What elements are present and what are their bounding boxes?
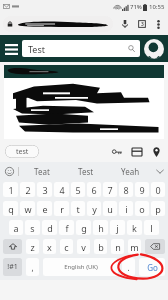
staticText: 8: [123, 184, 129, 196]
button[interactable]: Passwords: [110, 145, 123, 158]
button[interactable]: !#1: [3, 258, 22, 276]
button[interactable]: 8: [119, 182, 133, 197]
button[interactable]: Test: [22, 40, 140, 57]
button[interactable]: 3: [37, 182, 52, 197]
staticText: t: [76, 203, 80, 215]
button[interactable]: g: [76, 220, 91, 235]
button[interactable]: Shift: [3, 239, 22, 254]
button[interactable]: ,: [26, 258, 39, 276]
button[interactable]: 1: [3, 182, 18, 197]
staticText: v: [81, 241, 86, 253]
button[interactable]: n: [111, 239, 124, 254]
button[interactable]: Account: [144, 39, 164, 59]
button[interactable]: 2: [20, 182, 35, 197]
button[interactable]: English (UK): [43, 258, 118, 276]
staticText: 1: [8, 184, 14, 196]
button[interactable]: p: [151, 201, 165, 216]
button[interactable]: Yeah: [108, 162, 152, 180]
button[interactable]: 0: [151, 182, 165, 197]
button[interactable]: h: [93, 220, 108, 235]
staticText: Yeah: [121, 166, 140, 177]
staticText: q: [8, 203, 14, 215]
button[interactable]: Addresses: [150, 145, 163, 158]
staticText: d: [47, 222, 53, 234]
staticText: 3: [141, 21, 144, 28]
button[interactable]: Voice search: [118, 17, 132, 31]
button[interactable]: More options: [151, 17, 165, 31]
button[interactable]: o: [135, 201, 149, 216]
button[interactable]: Menu: [4, 39, 19, 59]
button[interactable]: m: [128, 239, 141, 254]
button[interactable]: j: [110, 220, 125, 235]
button[interactable]: Emoji: [0, 162, 18, 180]
button[interactable]: k: [127, 220, 142, 235]
button[interactable]: i: [119, 201, 133, 216]
button[interactable]: Test: [64, 162, 108, 180]
staticText: 71%: [130, 3, 142, 11]
button[interactable]: r: [54, 201, 69, 216]
button[interactable]: Payment methods: [130, 145, 143, 158]
button[interactable]: 7: [103, 182, 117, 197]
button[interactable]: 6: [87, 182, 101, 197]
staticText: Teat: [34, 166, 50, 177]
staticText: Test: [78, 166, 94, 177]
staticText: m: [130, 241, 139, 253]
button[interactable]: Go: [139, 258, 165, 276]
button[interactable]: u: [103, 201, 117, 216]
button[interactable]: q: [3, 201, 18, 216]
staticText: f: [65, 222, 69, 234]
staticText: !#1: [7, 262, 18, 272]
button[interactable]: b: [94, 239, 107, 254]
button[interactable]: x: [43, 239, 56, 254]
staticText: k: [132, 222, 137, 234]
staticText: 6: [91, 184, 97, 196]
staticText: Go: [147, 262, 158, 273]
button[interactable]: a: [9, 220, 23, 235]
staticText: l: [150, 222, 153, 234]
button[interactable]: Backspace: [145, 239, 165, 254]
staticText: 3: [42, 184, 48, 196]
button[interactable]: v: [77, 239, 90, 254]
button[interactable]: l: [144, 220, 159, 235]
button[interactable]: 4: [54, 182, 69, 197]
button[interactable]: Tabs: [135, 17, 149, 31]
button[interactable]: e: [37, 201, 52, 216]
staticText: i: [125, 203, 128, 215]
button[interactable]: More suggestions: [152, 163, 168, 179]
button[interactable]: d: [42, 220, 57, 235]
staticText: English (UK): [64, 263, 98, 271]
button[interactable]: t: [71, 201, 85, 216]
staticText: z: [30, 241, 35, 253]
staticText: 10:55: [149, 3, 165, 11]
button[interactable]: y: [87, 201, 101, 216]
staticText: 7: [107, 184, 113, 196]
other: Secure connection: [7, 21, 13, 27]
staticText: a: [13, 222, 19, 234]
staticText: u: [107, 203, 113, 215]
staticText: b: [98, 241, 104, 253]
staticText: 4: [59, 184, 65, 196]
staticText: ,: [31, 262, 34, 273]
staticText: w: [24, 203, 32, 215]
button[interactable]: 9: [135, 182, 149, 197]
staticText: .: [127, 262, 130, 273]
staticText: p: [155, 203, 161, 215]
staticText: x: [47, 241, 52, 253]
staticText: y: [92, 203, 97, 215]
staticText: test: [16, 147, 29, 157]
staticText: 9: [139, 184, 145, 196]
button[interactable]: s: [25, 220, 40, 235]
button[interactable]: test: [5, 145, 39, 158]
button[interactable]: .: [122, 258, 135, 276]
staticText: o: [139, 203, 145, 215]
button[interactable]: w: [20, 201, 35, 216]
button[interactable]: z: [26, 239, 39, 254]
button[interactable]: 5: [71, 182, 85, 197]
staticText: 5: [75, 184, 81, 196]
staticText: Test: [28, 43, 46, 55]
button[interactable]: c: [60, 239, 73, 254]
button[interactable]: Secure connection: [3, 16, 113, 32]
button[interactable]: Teat: [19, 162, 64, 180]
button[interactable]: f: [59, 220, 74, 235]
button[interactable]: [4, 65, 164, 139]
